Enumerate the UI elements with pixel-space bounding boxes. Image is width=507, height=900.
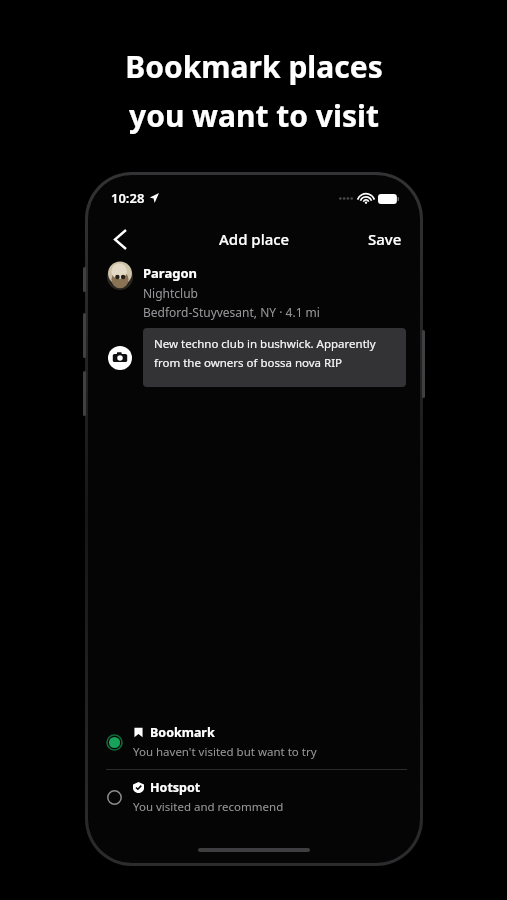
staticText: Nightclub xyxy=(143,285,198,301)
staticText: Save xyxy=(368,229,402,249)
staticText: You haven't visited but want to try xyxy=(133,744,317,760)
button[interactable]: Bookmark xyxy=(88,715,420,769)
staticText: from the owners of bossa nova RIP xyxy=(154,355,343,371)
button[interactable]: Hotspot xyxy=(88,770,420,824)
button[interactable]: New techno club in bushwick. Apparently xyxy=(143,328,406,387)
button[interactable]: Add photo xyxy=(107,345,133,371)
staticText: Hotspot xyxy=(150,779,201,796)
staticText: Paragon xyxy=(143,264,197,282)
staticText: Add place xyxy=(219,229,290,249)
button[interactable]: Paragon xyxy=(88,264,420,320)
button[interactable]: Back xyxy=(102,221,138,257)
staticText: 10:28 xyxy=(111,189,145,207)
staticText: Bedford-Stuyvesant, NY · 4.1 mi xyxy=(143,304,320,320)
staticText: Bookmark places xyxy=(125,46,383,87)
staticText: Bookmark xyxy=(150,724,215,741)
staticText: you want to visit xyxy=(129,95,379,136)
staticText: You visited and recommend xyxy=(133,799,284,815)
button[interactable]: Save xyxy=(364,225,406,253)
staticText: New techno club in bushwick. Apparently xyxy=(154,336,376,352)
